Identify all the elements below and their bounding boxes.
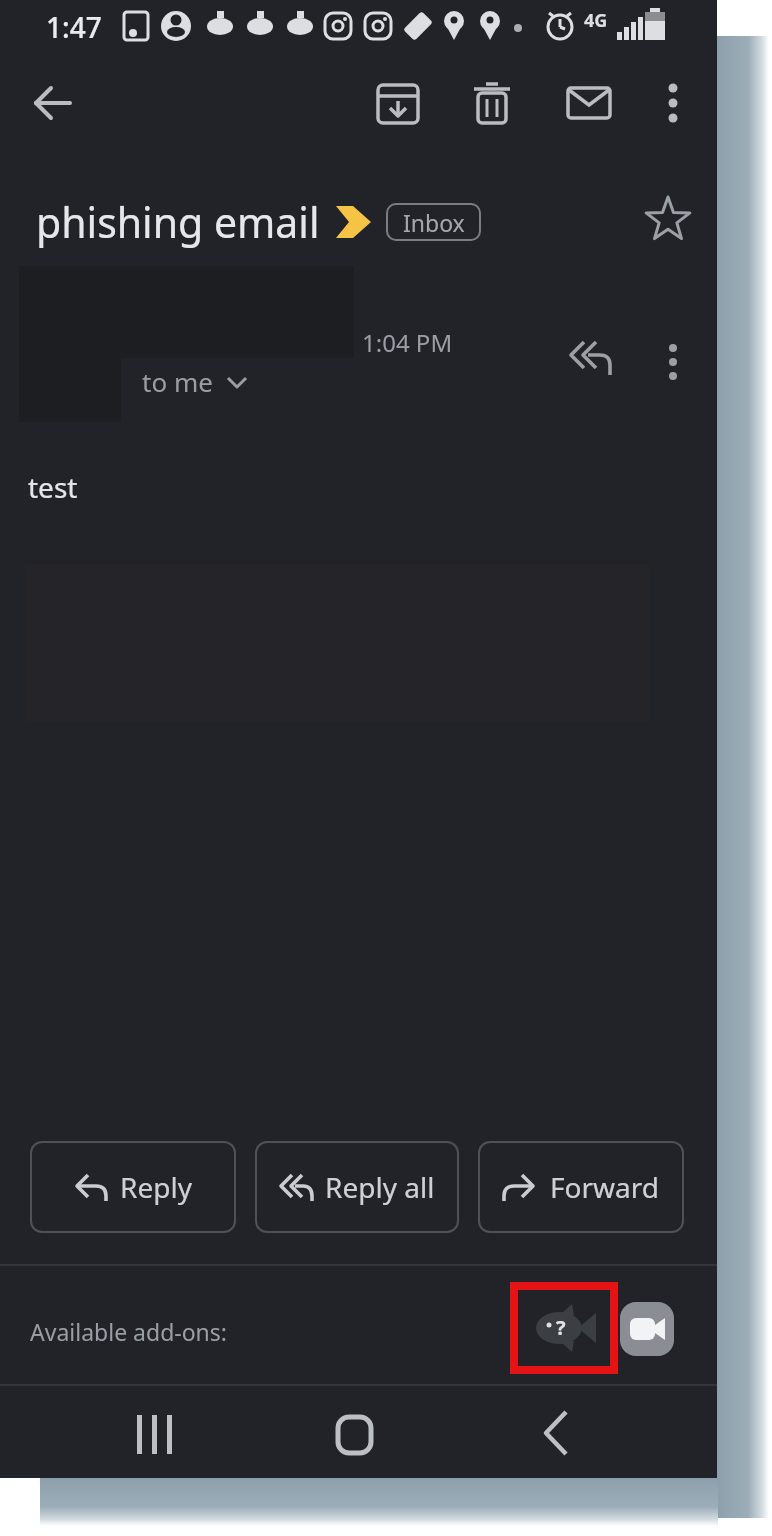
staticText: 4G <box>584 8 608 33</box>
button[interactable] <box>323 1400 387 1464</box>
button[interactable]: ? <box>510 1282 618 1374</box>
button[interactable]: Forward <box>478 1141 684 1233</box>
button[interactable] <box>563 77 615 129</box>
button[interactable]: to me <box>134 356 260 400</box>
staticText: to me <box>142 364 213 399</box>
button[interactable] <box>642 194 694 246</box>
staticText: test <box>28 468 78 506</box>
button[interactable] <box>122 1400 186 1464</box>
button[interactable] <box>524 1400 588 1464</box>
button[interactable] <box>466 77 518 129</box>
button[interactable] <box>26 77 78 129</box>
staticText: phishing email <box>36 194 320 250</box>
button[interactable] <box>651 77 695 129</box>
staticText: Reply <box>120 1168 192 1206</box>
staticText: ? <box>556 1314 566 1341</box>
button[interactable]: Reply all <box>255 1141 459 1233</box>
staticText: 1:47 <box>46 8 102 46</box>
staticText: 1:04 PM <box>362 326 453 359</box>
staticText: Available add-ons: <box>30 1316 227 1347</box>
staticText: Reply all <box>325 1168 435 1206</box>
staticText: Forward <box>550 1168 659 1206</box>
button[interactable] <box>620 1302 674 1356</box>
button[interactable] <box>558 334 620 386</box>
staticText: Inbox <box>403 207 465 238</box>
button[interactable] <box>653 338 693 386</box>
button[interactable]: Inbox <box>386 203 481 241</box>
button[interactable]: Reply <box>30 1141 236 1233</box>
button[interactable] <box>372 77 424 129</box>
